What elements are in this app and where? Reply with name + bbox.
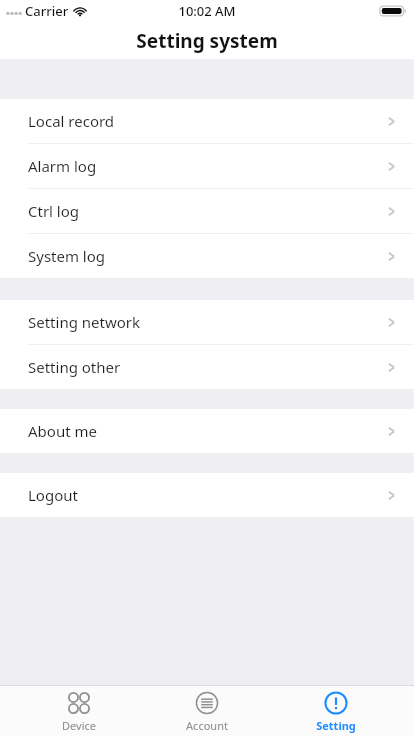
other: Device [67, 691, 91, 715]
staticText: Ctrl log [28, 201, 387, 221]
staticText: Carrier [25, 2, 69, 20]
staticText: Alarm log [28, 156, 387, 176]
staticText: Setting network [28, 312, 387, 332]
staticText: Logout [28, 485, 387, 505]
button[interactable]: Account [157, 686, 257, 736]
staticText: Device [62, 718, 96, 733]
button[interactable]: System log [0, 234, 414, 278]
staticText: 10:02 AM [178, 2, 236, 20]
staticText: System log [28, 246, 387, 266]
other: Setting [324, 691, 348, 715]
staticText: About me [28, 421, 387, 441]
staticText: Account [186, 718, 228, 733]
staticText: Setting other [28, 357, 387, 377]
staticText: Local record [28, 111, 387, 131]
button[interactable]: About me [0, 409, 414, 453]
button[interactable]: Device [29, 686, 129, 736]
staticText: Setting [316, 718, 356, 733]
button[interactable]: Setting network [0, 300, 414, 344]
button[interactable]: Setting other [0, 345, 414, 389]
button[interactable]: Local record [0, 99, 414, 143]
staticText: Setting system [136, 28, 278, 54]
other: Account [195, 691, 219, 715]
button[interactable]: Setting [286, 686, 386, 736]
button[interactable]: Alarm log [0, 144, 414, 188]
button[interactable]: Ctrl log [0, 189, 414, 233]
button[interactable]: Logout [0, 473, 414, 517]
